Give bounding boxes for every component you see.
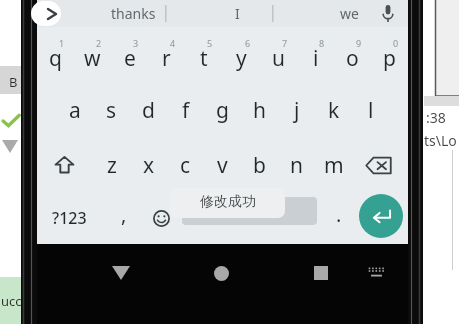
- staticText: 0: [393, 37, 399, 49]
- button[interactable]: 0: [371, 27, 408, 81]
- staticText: 1: [59, 37, 65, 49]
- staticText: 9: [356, 37, 362, 49]
- button[interactable]: g: [204, 83, 241, 137]
- staticText: n: [290, 151, 303, 180]
- staticText: k: [328, 96, 340, 125]
- staticText: h: [253, 96, 266, 125]
- staticText: t: [200, 44, 208, 73]
- staticText: e: [124, 44, 136, 73]
- button[interactable]: Shift: [41, 139, 87, 191]
- button[interactable]: Voice input: [369, 0, 407, 27]
- staticText: 4: [170, 37, 176, 49]
- staticText: j: [294, 96, 300, 125]
- button[interactable]: m: [315, 139, 352, 191]
- button[interactable]: 6: [223, 27, 260, 81]
- staticText: x: [143, 151, 155, 180]
- button[interactable]: h: [241, 83, 278, 137]
- staticText: we: [340, 4, 359, 23]
- button[interactable]: Backspace: [355, 139, 401, 191]
- button[interactable]: k: [315, 83, 352, 137]
- staticText: ucc: [1, 292, 22, 310]
- button[interactable]: x: [130, 139, 167, 191]
- button[interactable]: b: [241, 139, 278, 191]
- staticText: ?123: [52, 207, 87, 229]
- staticText: ts\Lo: [424, 131, 457, 150]
- staticText: m: [324, 151, 344, 180]
- staticText: i: [313, 44, 319, 73]
- button[interactable]: z: [93, 139, 130, 191]
- staticText: ,: [121, 201, 127, 228]
- staticText: u: [272, 44, 285, 73]
- staticText: I: [235, 4, 240, 23]
- button[interactable]: l: [352, 83, 389, 137]
- staticText: l: [368, 96, 374, 125]
- button[interactable]: n: [278, 139, 315, 191]
- staticText: y: [236, 44, 247, 73]
- button[interactable]: 3: [111, 27, 148, 81]
- staticText: c: [180, 151, 191, 180]
- button[interactable]: 7: [260, 27, 297, 81]
- button[interactable]: 8: [297, 27, 334, 81]
- staticText: 2: [96, 37, 102, 49]
- button[interactable]: ,: [107, 193, 141, 243]
- button[interactable]: 2: [74, 27, 111, 81]
- button[interactable]: 1: [37, 27, 74, 81]
- button[interactable]: Emoji: [143, 193, 179, 243]
- button[interactable]: Expand suggestions: [31, 1, 61, 26]
- button[interactable]: Space: [182, 197, 317, 225]
- button[interactable]: s: [93, 83, 130, 137]
- staticText: p: [383, 44, 396, 73]
- button[interactable]: f: [167, 83, 204, 137]
- button[interactable]: I: [207, 0, 267, 27]
- staticText: d: [142, 96, 155, 125]
- staticText: :38: [426, 108, 446, 127]
- button[interactable]: Recent apps: [300, 252, 342, 294]
- staticText: .: [336, 201, 342, 228]
- button[interactable]: a: [56, 83, 93, 137]
- button[interactable]: ?123: [41, 193, 97, 243]
- staticText: 3: [133, 37, 139, 49]
- button[interactable]: 9: [334, 27, 371, 81]
- staticText: b: [253, 151, 266, 180]
- button[interactable]: Back: [100, 252, 142, 294]
- button[interactable]: Enter: [359, 194, 403, 238]
- staticText: r: [162, 44, 171, 73]
- staticText: g: [216, 96, 229, 125]
- button[interactable]: v: [204, 139, 241, 191]
- staticText: o: [346, 44, 359, 73]
- button[interactable]: j: [278, 83, 315, 137]
- button[interactable]: 4: [148, 27, 185, 81]
- staticText: B: [9, 73, 18, 91]
- staticText: f: [182, 96, 190, 125]
- staticText: a: [69, 96, 81, 125]
- button[interactable]: 5: [185, 27, 222, 81]
- button[interactable]: .: [323, 193, 355, 243]
- button[interactable]: Home: [200, 252, 242, 294]
- staticText: w: [84, 44, 101, 73]
- button[interactable]: Switch keyboard: [358, 254, 394, 290]
- staticText: v: [217, 151, 228, 180]
- button[interactable]: d: [130, 83, 167, 137]
- staticText: z: [107, 151, 117, 180]
- staticText: thanks: [111, 4, 156, 23]
- staticText: 5: [207, 37, 213, 49]
- button[interactable]: c: [167, 139, 204, 191]
- staticText: s: [106, 96, 117, 125]
- staticText: 7: [282, 37, 288, 49]
- button[interactable]: we: [319, 0, 379, 27]
- button[interactable]: thanks: [103, 0, 163, 27]
- staticText: q: [49, 44, 62, 73]
- staticText: 8: [319, 37, 325, 49]
- staticText: 6: [245, 37, 251, 49]
- staticText: 修改成功: [200, 193, 256, 211]
